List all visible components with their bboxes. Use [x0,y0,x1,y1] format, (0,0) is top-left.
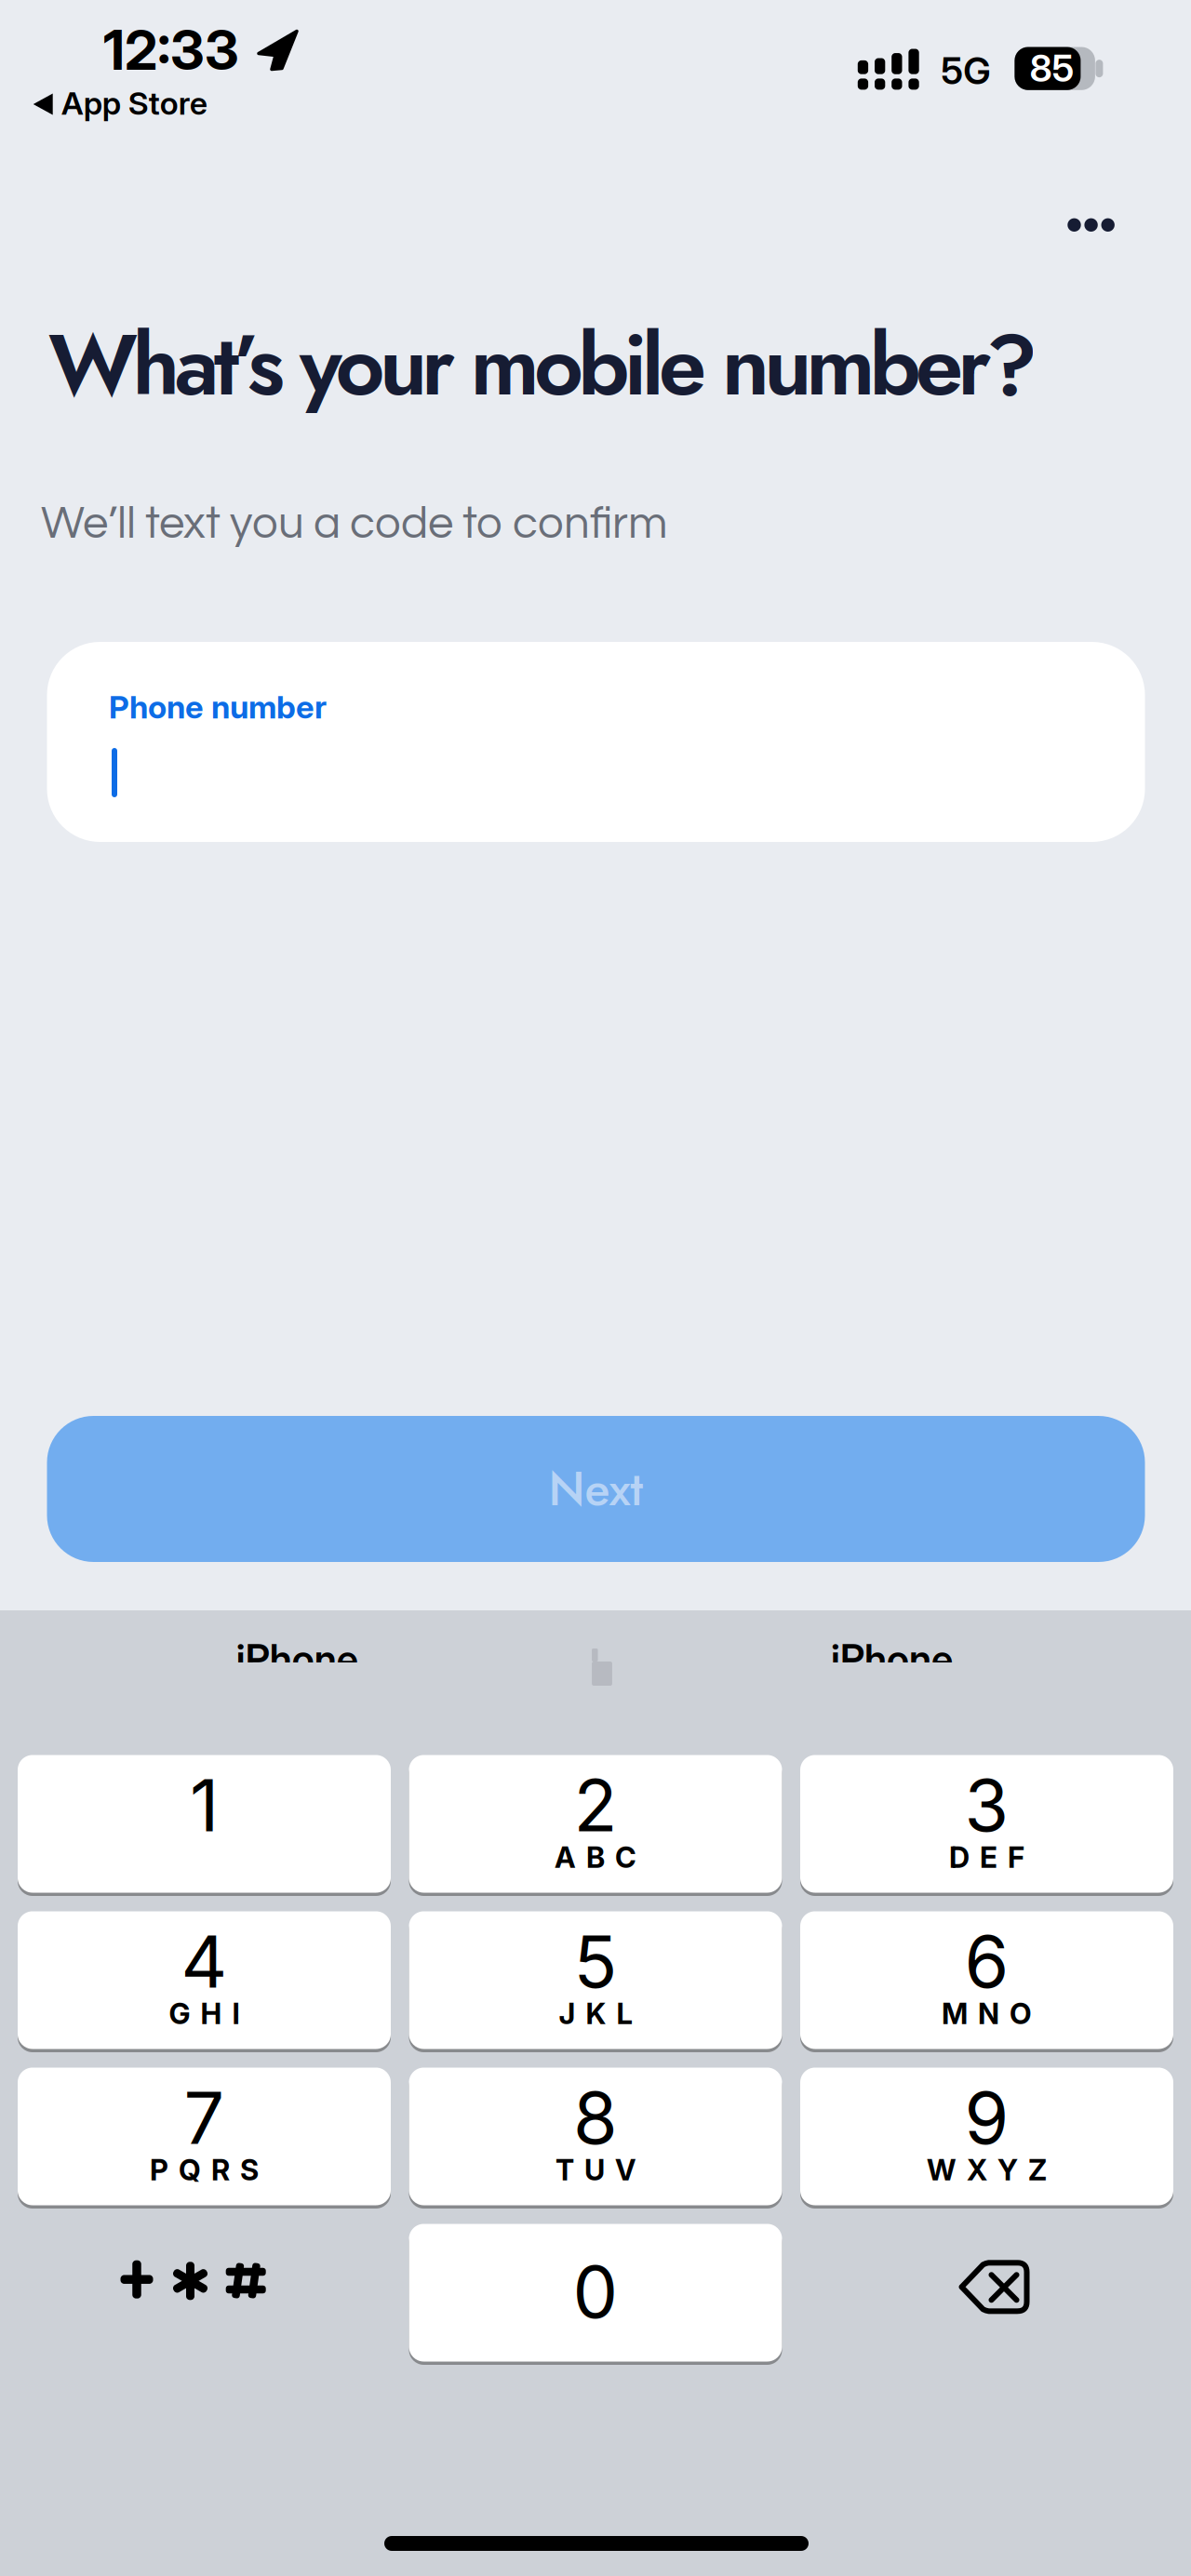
staticText: 8 [573,2074,618,2161]
staticText: 0 [573,2248,618,2335]
staticText: 12:33 [103,17,239,83]
button[interactable]: 6 [800,1911,1173,2049]
staticText: 7 [184,2074,225,2161]
staticText: 5G [941,48,990,93]
staticText: JKL [559,1996,632,2031]
staticText: GHI [169,1996,240,2031]
button[interactable]: 8 [409,2068,782,2205]
staticText: 4 [181,1918,227,2005]
staticText: PQRS [150,2152,259,2187]
button[interactable]: Plus star pound [118,2257,276,2307]
button[interactable]: 3 [800,1755,1173,1893]
staticText: Next [549,1455,643,1523]
button[interactable]: iPhone [102,1608,492,1710]
button[interactable]: iPhone [697,1608,1087,1710]
staticText: WXYZ [927,2152,1047,2187]
button[interactable]: Delete [959,2257,1030,2317]
button[interactable]: More options [1068,218,1115,232]
staticText: 1 [190,1762,219,1849]
staticText: 5 [574,1918,617,2005]
staticText: Phone number [109,688,327,726]
staticText: iPhone [236,1635,358,1682]
staticText: 3 [964,1762,1009,1849]
staticText: 6 [964,1918,1009,2005]
staticText: DEF [949,1840,1024,1875]
staticText: 85 [1029,45,1074,91]
button[interactable]: 4 [18,1911,391,2049]
button[interactable]: Back to App Store [33,83,247,124]
button[interactable]: 0 [409,2224,782,2362]
staticText: 9 [964,2074,1009,2161]
button[interactable]: 2 [409,1755,782,1893]
staticText: What’s your mobile number? [48,303,1038,426]
staticText: 2 [574,1762,617,1849]
button[interactable]: 7 [18,2068,391,2205]
button[interactable]: 1 [18,1755,391,1893]
staticText: ABC [555,1840,636,1875]
staticText: MNO [942,1996,1032,2031]
staticText: TUV [555,2152,636,2187]
button[interactable]: 5 [409,1911,782,2049]
button[interactable]: Next [47,1416,1145,1562]
staticText: App Store [61,84,207,122]
staticText: We’ll text you a code to confirm [41,500,668,547]
button[interactable]: 9 [800,2068,1173,2205]
button[interactable]: Phone number [47,642,1145,842]
staticText: iPhone [831,1635,953,1682]
